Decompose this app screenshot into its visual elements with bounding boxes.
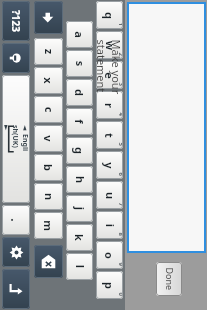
- button[interactable]: l: [66, 253, 93, 280]
- button[interactable]: ◄ English(UK) ►: [2, 75, 30, 203]
- staticText: o: [102, 252, 117, 259]
- staticText: k: [72, 234, 87, 241]
- staticText: h: [72, 175, 87, 183]
- staticText: 4: [116, 112, 123, 116]
- staticText: Make your statement: [93, 39, 123, 114]
- staticText: 2: [116, 52, 123, 56]
- staticText: p: [102, 282, 117, 289]
- button[interactable]: u: [96, 181, 123, 209]
- staticText: b: [41, 164, 56, 171]
- staticText: ?123: [9, 10, 23, 32]
- button[interactable]: Tab: [34, 1, 63, 34]
- button[interactable]: t: [96, 121, 123, 149]
- staticText: c: [41, 106, 56, 112]
- button[interactable]: y: [96, 151, 123, 179]
- staticText: g: [72, 147, 87, 154]
- button[interactable]: f: [66, 108, 93, 135]
- button[interactable]: n: [34, 183, 63, 210]
- staticText: r: [102, 103, 117, 108]
- button[interactable]: w: [96, 31, 123, 59]
- button[interactable]: e: [96, 61, 123, 89]
- staticText: 6: [116, 172, 123, 176]
- staticText: x: [41, 77, 56, 84]
- staticText: 9: [116, 262, 123, 266]
- button[interactable]: g: [66, 137, 93, 164]
- staticText: s: [72, 60, 87, 66]
- button[interactable]: s: [66, 50, 93, 77]
- button[interactable]: Settings: [2, 237, 30, 267]
- button[interactable]: c: [34, 96, 63, 123]
- staticText: n: [41, 192, 56, 200]
- button[interactable]: .: [2, 205, 30, 235]
- staticText: z: [41, 48, 56, 54]
- staticText: f: [72, 119, 87, 124]
- staticText: i: [102, 223, 117, 227]
- button[interactable]: Switch language: [2, 43, 30, 73]
- staticText: q: [102, 12, 117, 19]
- staticText: ◄ English(UK) ►: [2, 125, 30, 153]
- staticText: u: [102, 191, 117, 199]
- button[interactable]: m: [34, 212, 63, 239]
- button[interactable]: Done: [156, 262, 182, 296]
- button[interactable]: r: [96, 91, 123, 119]
- staticText: 0: [116, 292, 123, 296]
- button[interactable]: o: [96, 241, 123, 269]
- staticText: Done: [163, 267, 175, 290]
- button[interactable]: Backspace: [34, 245, 63, 278]
- button[interactable]: Enter: [2, 269, 30, 309]
- staticText: w: [102, 40, 117, 50]
- staticText: t: [102, 133, 117, 138]
- button[interactable]: a: [66, 21, 93, 48]
- button[interactable]: z: [34, 38, 63, 65]
- staticText: 7: [116, 202, 123, 206]
- staticText: y: [102, 162, 117, 169]
- button[interactable]: k: [66, 224, 93, 251]
- staticText: e: [102, 72, 117, 79]
- staticText: 5: [116, 142, 123, 146]
- button[interactable]: d: [66, 79, 93, 106]
- button[interactable]: j: [66, 195, 93, 222]
- staticText: 1: [116, 22, 123, 26]
- staticText: j: [72, 206, 87, 210]
- staticText: m: [41, 220, 56, 231]
- staticText: l: [72, 264, 87, 268]
- button[interactable]: v: [34, 125, 63, 152]
- staticText: 8: [116, 232, 123, 236]
- staticText: a: [72, 31, 87, 38]
- staticText: d: [72, 89, 87, 96]
- button[interactable]: b: [34, 154, 63, 181]
- button[interactable]: Symbols: [2, 1, 30, 41]
- button[interactable]: p: [96, 271, 123, 299]
- button[interactable]: q: [96, 1, 123, 29]
- staticText: .: [8, 218, 24, 222]
- button[interactable]: x: [34, 67, 63, 94]
- button[interactable]: i: [96, 211, 123, 239]
- staticText: v: [41, 135, 56, 142]
- staticText: 3: [116, 82, 123, 86]
- button[interactable]: h: [66, 166, 93, 193]
